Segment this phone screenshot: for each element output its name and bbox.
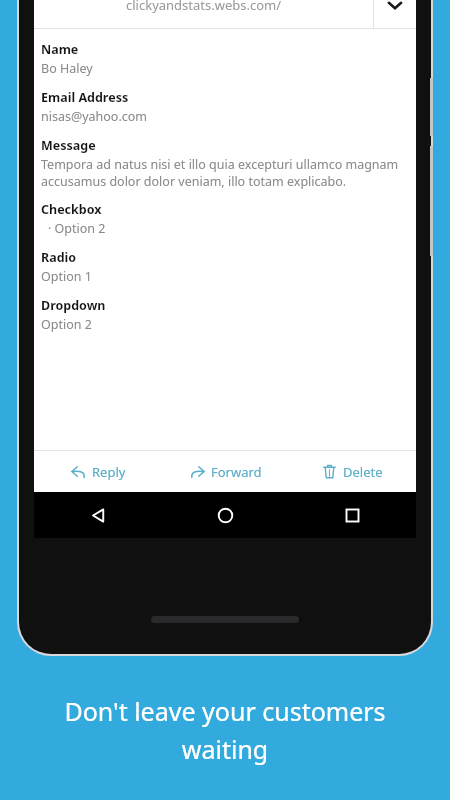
- staticText: Bo Haley: [41, 60, 93, 77]
- staticText: Radio: [41, 249, 77, 266]
- staticText: Option 2: [41, 316, 92, 333]
- button[interactable]: Forward: [162, 451, 289, 492]
- staticText: Message: [41, 137, 96, 154]
- staticText: Forward: [211, 463, 262, 481]
- button[interactable]: Back: [34, 492, 162, 538]
- button[interactable]: Expand: [374, 0, 416, 28]
- button[interactable]: Home: [162, 492, 289, 538]
- button[interactable]: Delete: [289, 451, 416, 492]
- button[interactable]: Reply: [34, 451, 162, 492]
- staticText: Option 1: [41, 268, 92, 285]
- staticText: Don't leave your customers waiting: [28, 694, 422, 766]
- staticText: Name: [41, 41, 79, 58]
- staticText: · Option 2: [48, 220, 106, 237]
- staticText: clickyandstats.webs.com/: [126, 0, 282, 14]
- staticText: Dropdown: [41, 297, 106, 314]
- staticText: Email Address: [41, 89, 129, 106]
- staticText: Tempora ad natus nisi et illo quia excep…: [41, 156, 406, 189]
- staticText: Delete: [343, 463, 383, 481]
- staticText: nisas@yahoo.com: [41, 108, 148, 125]
- staticText: Reply: [92, 463, 126, 481]
- staticText: Checkbox: [41, 201, 102, 218]
- button[interactable]: Recents: [289, 492, 416, 538]
